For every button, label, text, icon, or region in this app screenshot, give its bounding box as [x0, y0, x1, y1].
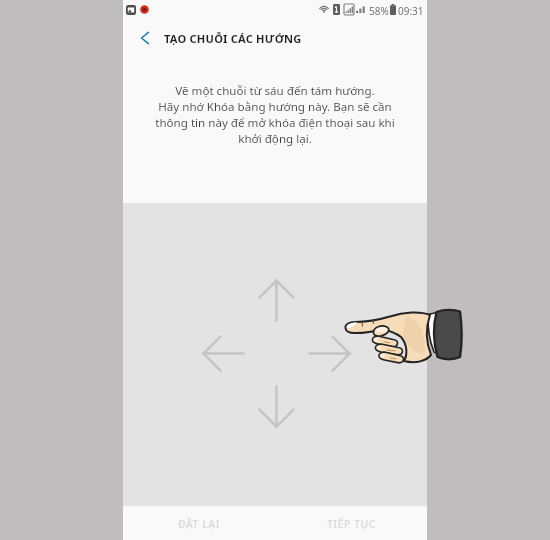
- staticText: thông tin này để mở khóa điện thoại sau …: [155, 115, 395, 131]
- staticText: 09:31: [398, 4, 424, 18]
- button[interactable]: ĐẶT LẠI: [123, 507, 275, 540]
- staticText: Vẽ một chuỗi từ sáu đến tám hướng.: [175, 83, 375, 99]
- staticText: TẠO CHUỖI CÁC HƯỚNG: [164, 31, 302, 46]
- button[interactable]: TIẾP TỤC: [275, 507, 427, 540]
- staticText: Hãy nhớ Khóa bằng hướng này. Bạn sẽ cần: [158, 99, 392, 115]
- staticText: ĐẶT LẠI: [178, 517, 220, 531]
- button[interactable]: Back: [123, 20, 164, 57]
- staticText: 58%: [369, 4, 389, 18]
- staticText: khởi động lại.: [238, 131, 312, 147]
- staticText: TIẾP TỤC: [327, 517, 376, 531]
